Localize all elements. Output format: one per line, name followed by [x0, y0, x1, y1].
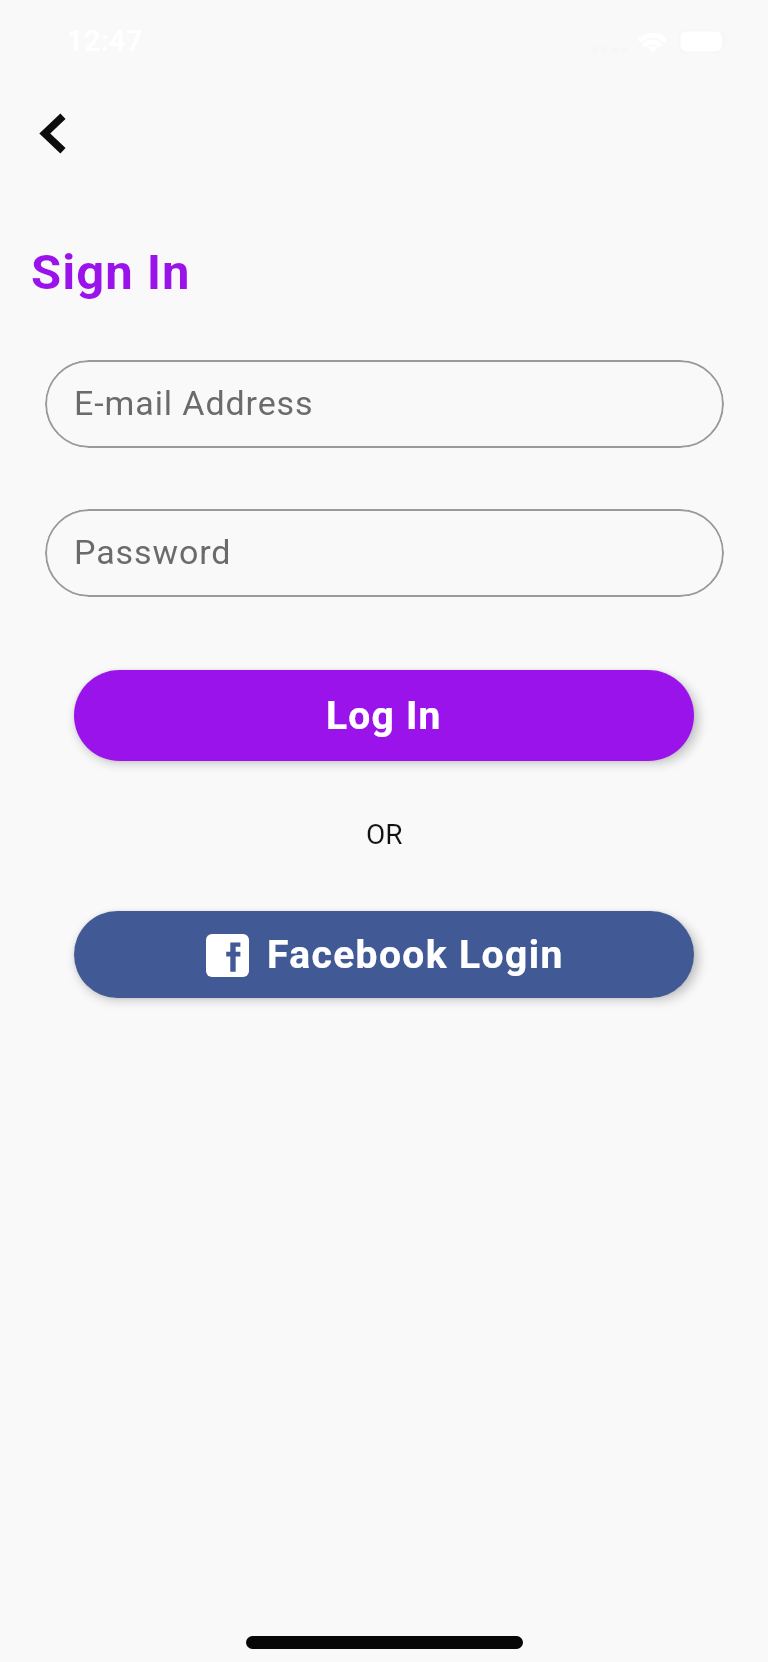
staticText: Password	[74, 532, 232, 572]
staticText: E-mail Address	[74, 383, 314, 423]
button[interactable]: Log In	[74, 670, 694, 761]
staticText: Sign In	[31, 244, 191, 301]
button[interactable]: Password	[45, 509, 724, 597]
staticText: OR	[366, 818, 403, 851]
staticText: Log In	[326, 693, 442, 739]
button[interactable]: Back	[16, 97, 88, 169]
staticText: Facebook Login	[267, 932, 564, 978]
button[interactable]: Facebook Login	[74, 911, 694, 998]
button[interactable]: E-mail Address	[45, 360, 724, 448]
